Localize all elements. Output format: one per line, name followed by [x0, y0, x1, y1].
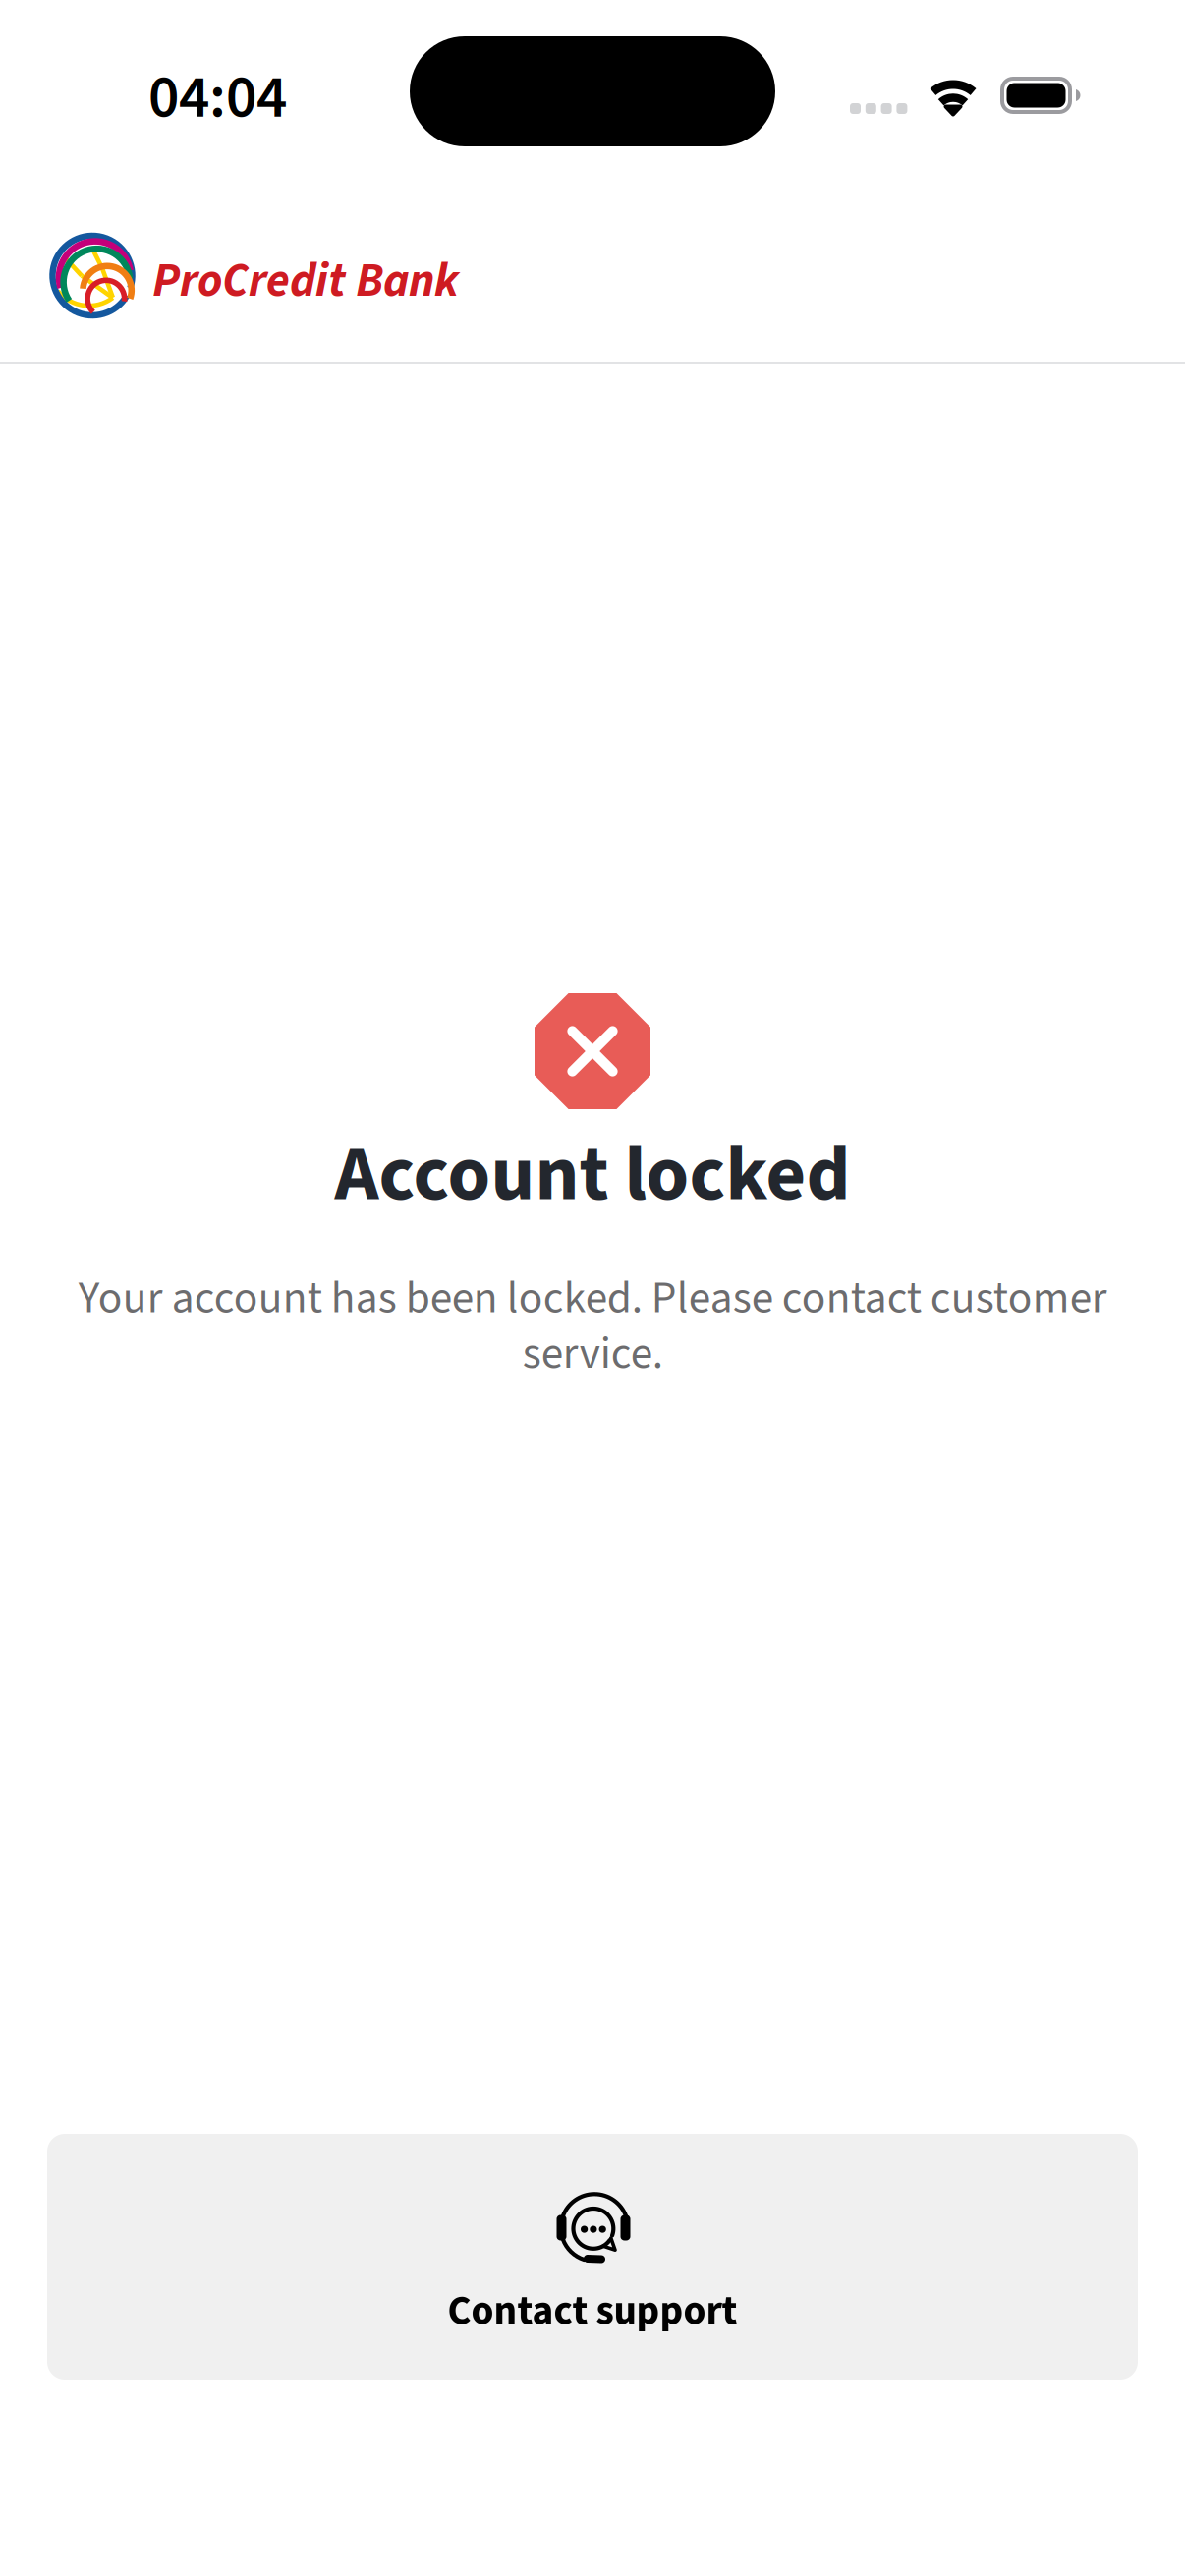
staticText: 04:04: [148, 55, 287, 141]
staticText: Account locked: [335, 1120, 850, 1230]
button[interactable]: Contact support: [47, 2134, 1138, 2380]
staticText: ProCredit Bank: [152, 247, 459, 315]
staticText: Contact support: [448, 2282, 737, 2340]
staticText: Your account has been locked. Please con…: [78, 1266, 1107, 1385]
